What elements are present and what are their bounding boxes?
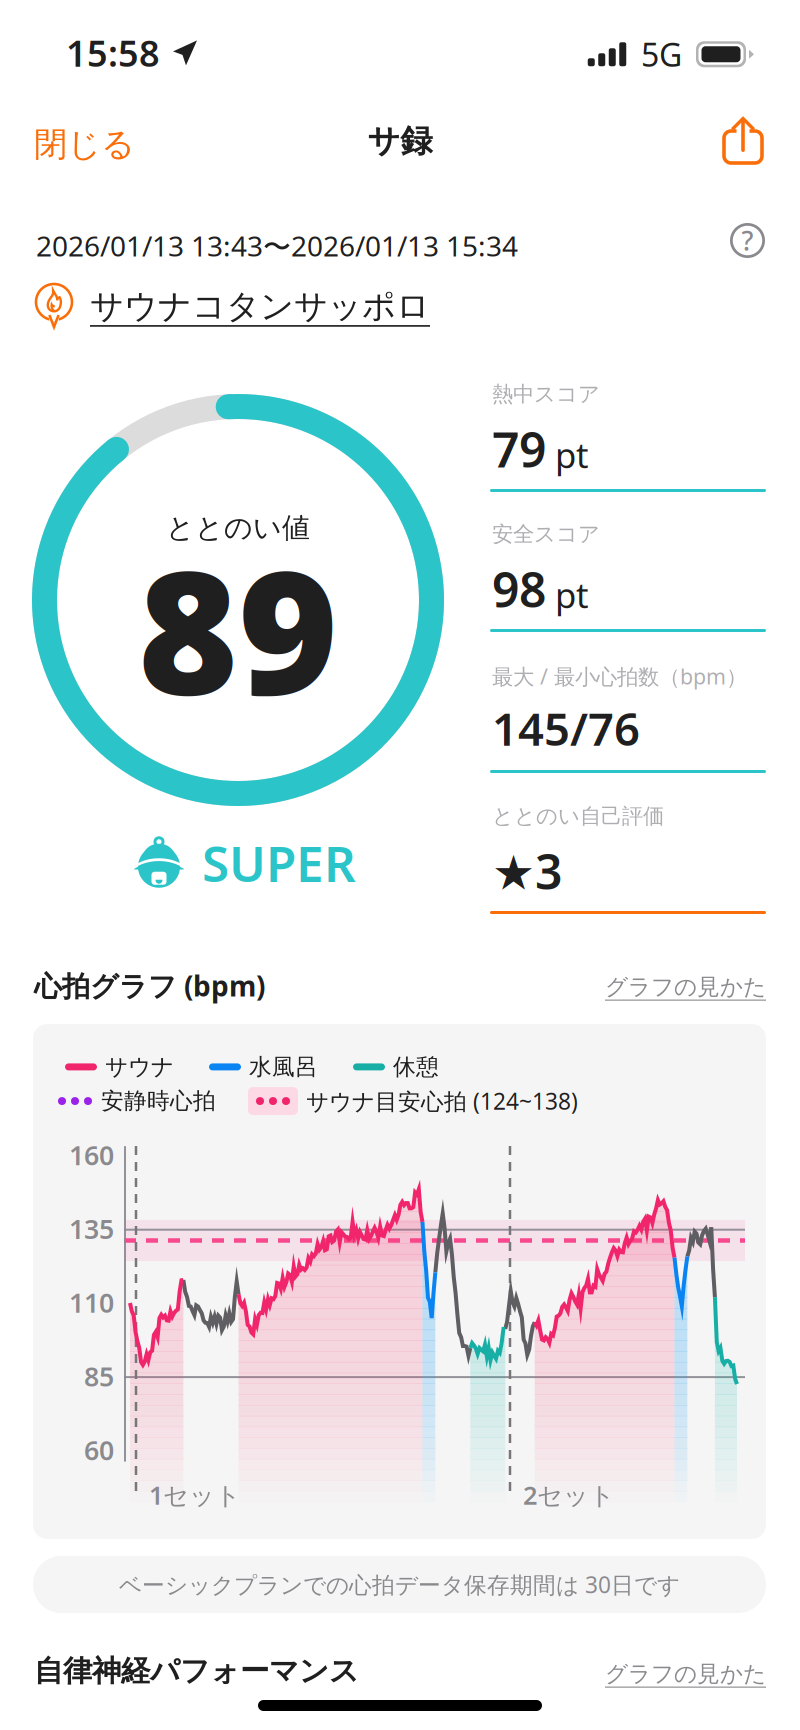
staticText: グラフの見かた xyxy=(605,973,766,1001)
staticText: 160 xyxy=(69,1137,114,1173)
staticText: ベーシックプランでの心拍データ保存期間は 30日です xyxy=(119,1569,680,1599)
staticText: 110 xyxy=(69,1285,114,1320)
button[interactable]: グラフの見かた xyxy=(595,1650,776,1698)
staticText: 79 xyxy=(492,417,546,481)
staticText: サウナ目安心拍 (124~138) xyxy=(306,1086,578,1116)
staticText: サ録 xyxy=(367,121,432,161)
staticText: pt xyxy=(555,432,589,478)
staticText: 145/76 xyxy=(492,698,640,758)
button[interactable]: グラフの見かた xyxy=(595,963,776,1011)
staticText: 1セット xyxy=(149,1478,241,1512)
staticText: 85 xyxy=(84,1358,114,1394)
staticText: 最大 / 最小心拍数（bpm） xyxy=(492,662,747,690)
button[interactable]: 共有 xyxy=(696,95,800,187)
staticText: ★3 xyxy=(492,839,562,903)
staticText: ? xyxy=(741,223,753,258)
staticText: 98 xyxy=(492,557,546,621)
staticText: 60 xyxy=(84,1432,114,1467)
staticText: 熱中スコア xyxy=(492,381,600,407)
staticText: グラフの見かた xyxy=(605,1660,766,1688)
staticText: 安静時心拍 xyxy=(101,1087,216,1115)
staticText: 2026/01/13 13:43〜2026/01/13 15:34 xyxy=(36,227,518,264)
button[interactable]: 閉じる xyxy=(0,95,161,194)
staticText: 2セット xyxy=(523,1478,615,1512)
button[interactable]: サウナコタンサッポロ xyxy=(0,277,464,336)
staticText: ととのい自己評価 xyxy=(492,803,664,829)
staticText: 休憩 xyxy=(393,1053,439,1081)
staticText: 自律神経パフォーマンス xyxy=(34,1653,359,1689)
staticText: 5G xyxy=(641,33,682,75)
staticText: 15:58 xyxy=(66,29,160,77)
staticText: ととのい値 xyxy=(166,511,310,545)
staticText: 135 xyxy=(69,1211,114,1246)
button[interactable]: ヘルプ xyxy=(718,211,777,270)
staticText: 閉じる xyxy=(34,124,135,165)
staticText: pt xyxy=(555,572,589,618)
staticText: サウナコタンサッポロ xyxy=(90,286,430,327)
staticText: 89 xyxy=(138,515,338,741)
staticText: 水風呂 xyxy=(249,1053,318,1081)
staticText: サウナ xyxy=(105,1053,174,1081)
staticText: 心拍グラフ (bpm) xyxy=(34,967,265,1004)
staticText: SUPER xyxy=(202,830,356,895)
staticText: 安全スコア xyxy=(492,521,600,547)
